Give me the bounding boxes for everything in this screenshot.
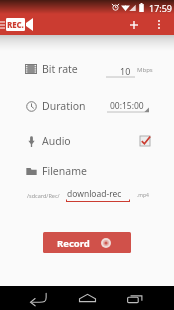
button[interactable]: Back [20, 286, 56, 310]
staticText: /sdcard/Rec/ [27, 192, 60, 199]
button[interactable]: Filename [0, 162, 174, 180]
staticText: REC. [7, 19, 24, 30]
button[interactable]: 00:15:00 [107, 97, 149, 113]
button[interactable]: Add [123, 14, 145, 35]
button[interactable]: Navigation menu [0, 21, 5, 29]
button[interactable]: Audio [0, 132, 174, 150]
staticText: 17:59 [149, 2, 173, 14]
staticText: .mp4 [137, 192, 149, 199]
staticText: download-rec [67, 188, 122, 200]
staticText: Duration [42, 99, 86, 113]
staticText: Filename [42, 164, 87, 178]
staticText: Mbps [137, 66, 153, 74]
button[interactable]: Home [69, 286, 105, 310]
button[interactable]: Audio enabled [140, 136, 150, 146]
button[interactable]: 10 [106, 62, 135, 78]
button[interactable]: More options [148, 14, 170, 35]
staticText: 10 [120, 65, 131, 77]
staticText: Bit rate [42, 62, 78, 76]
staticText: Record [57, 237, 90, 250]
button[interactable]: download-rec [66, 188, 130, 202]
button[interactable]: Record [43, 232, 131, 253]
staticText: Audio [42, 134, 71, 148]
button[interactable]: Duration [0, 97, 174, 115]
button[interactable]: Bit rate [0, 60, 174, 78]
staticText: 00:15:00 [110, 100, 144, 112]
button[interactable]: Recent apps [117, 286, 153, 310]
